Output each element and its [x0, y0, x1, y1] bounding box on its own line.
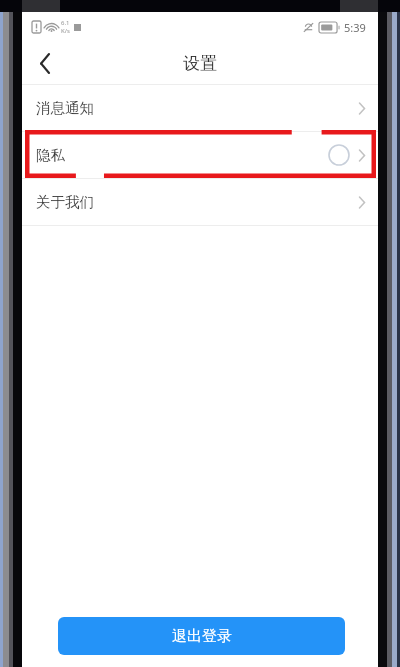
staticText: 退出登录 — [172, 627, 232, 646]
staticText: 消息通知 — [36, 99, 94, 117]
button[interactable]: 隐私 — [22, 132, 378, 178]
staticText: 设置 — [183, 53, 217, 74]
staticText: K/s — [61, 27, 70, 35]
staticText: 关于我们 — [36, 193, 94, 211]
button[interactable]: 消息通知 — [22, 85, 378, 131]
staticText: 隐私 — [36, 146, 65, 164]
staticText: 5:39 — [344, 20, 366, 35]
staticText: 6.1 — [61, 19, 70, 27]
button[interactable]: 退出登录 — [58, 617, 345, 655]
button[interactable]: Back — [22, 42, 68, 84]
button[interactable]: 关于我们 — [22, 179, 378, 225]
